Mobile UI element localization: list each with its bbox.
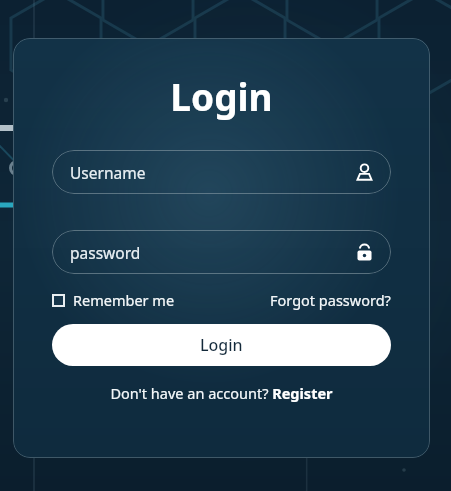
button[interactable]: Remember me [52, 290, 175, 310]
staticText: Forgot password? [270, 290, 391, 310]
staticText: Username [70, 162, 146, 183]
staticText: Login [170, 71, 273, 121]
button[interactable]: Forgot password? [270, 290, 391, 310]
button[interactable]: password [52, 230, 391, 274]
staticText: Remember me [73, 290, 175, 310]
other: User [355, 163, 374, 182]
other: Password [355, 243, 374, 262]
staticText: Login [200, 334, 243, 356]
button[interactable]: Login [52, 324, 391, 366]
staticText: Don't have an account? Register [110, 383, 333, 403]
button[interactable]: Don't have an account? Register [110, 383, 333, 403]
staticText: password [70, 242, 141, 263]
button[interactable]: Username [52, 150, 391, 194]
